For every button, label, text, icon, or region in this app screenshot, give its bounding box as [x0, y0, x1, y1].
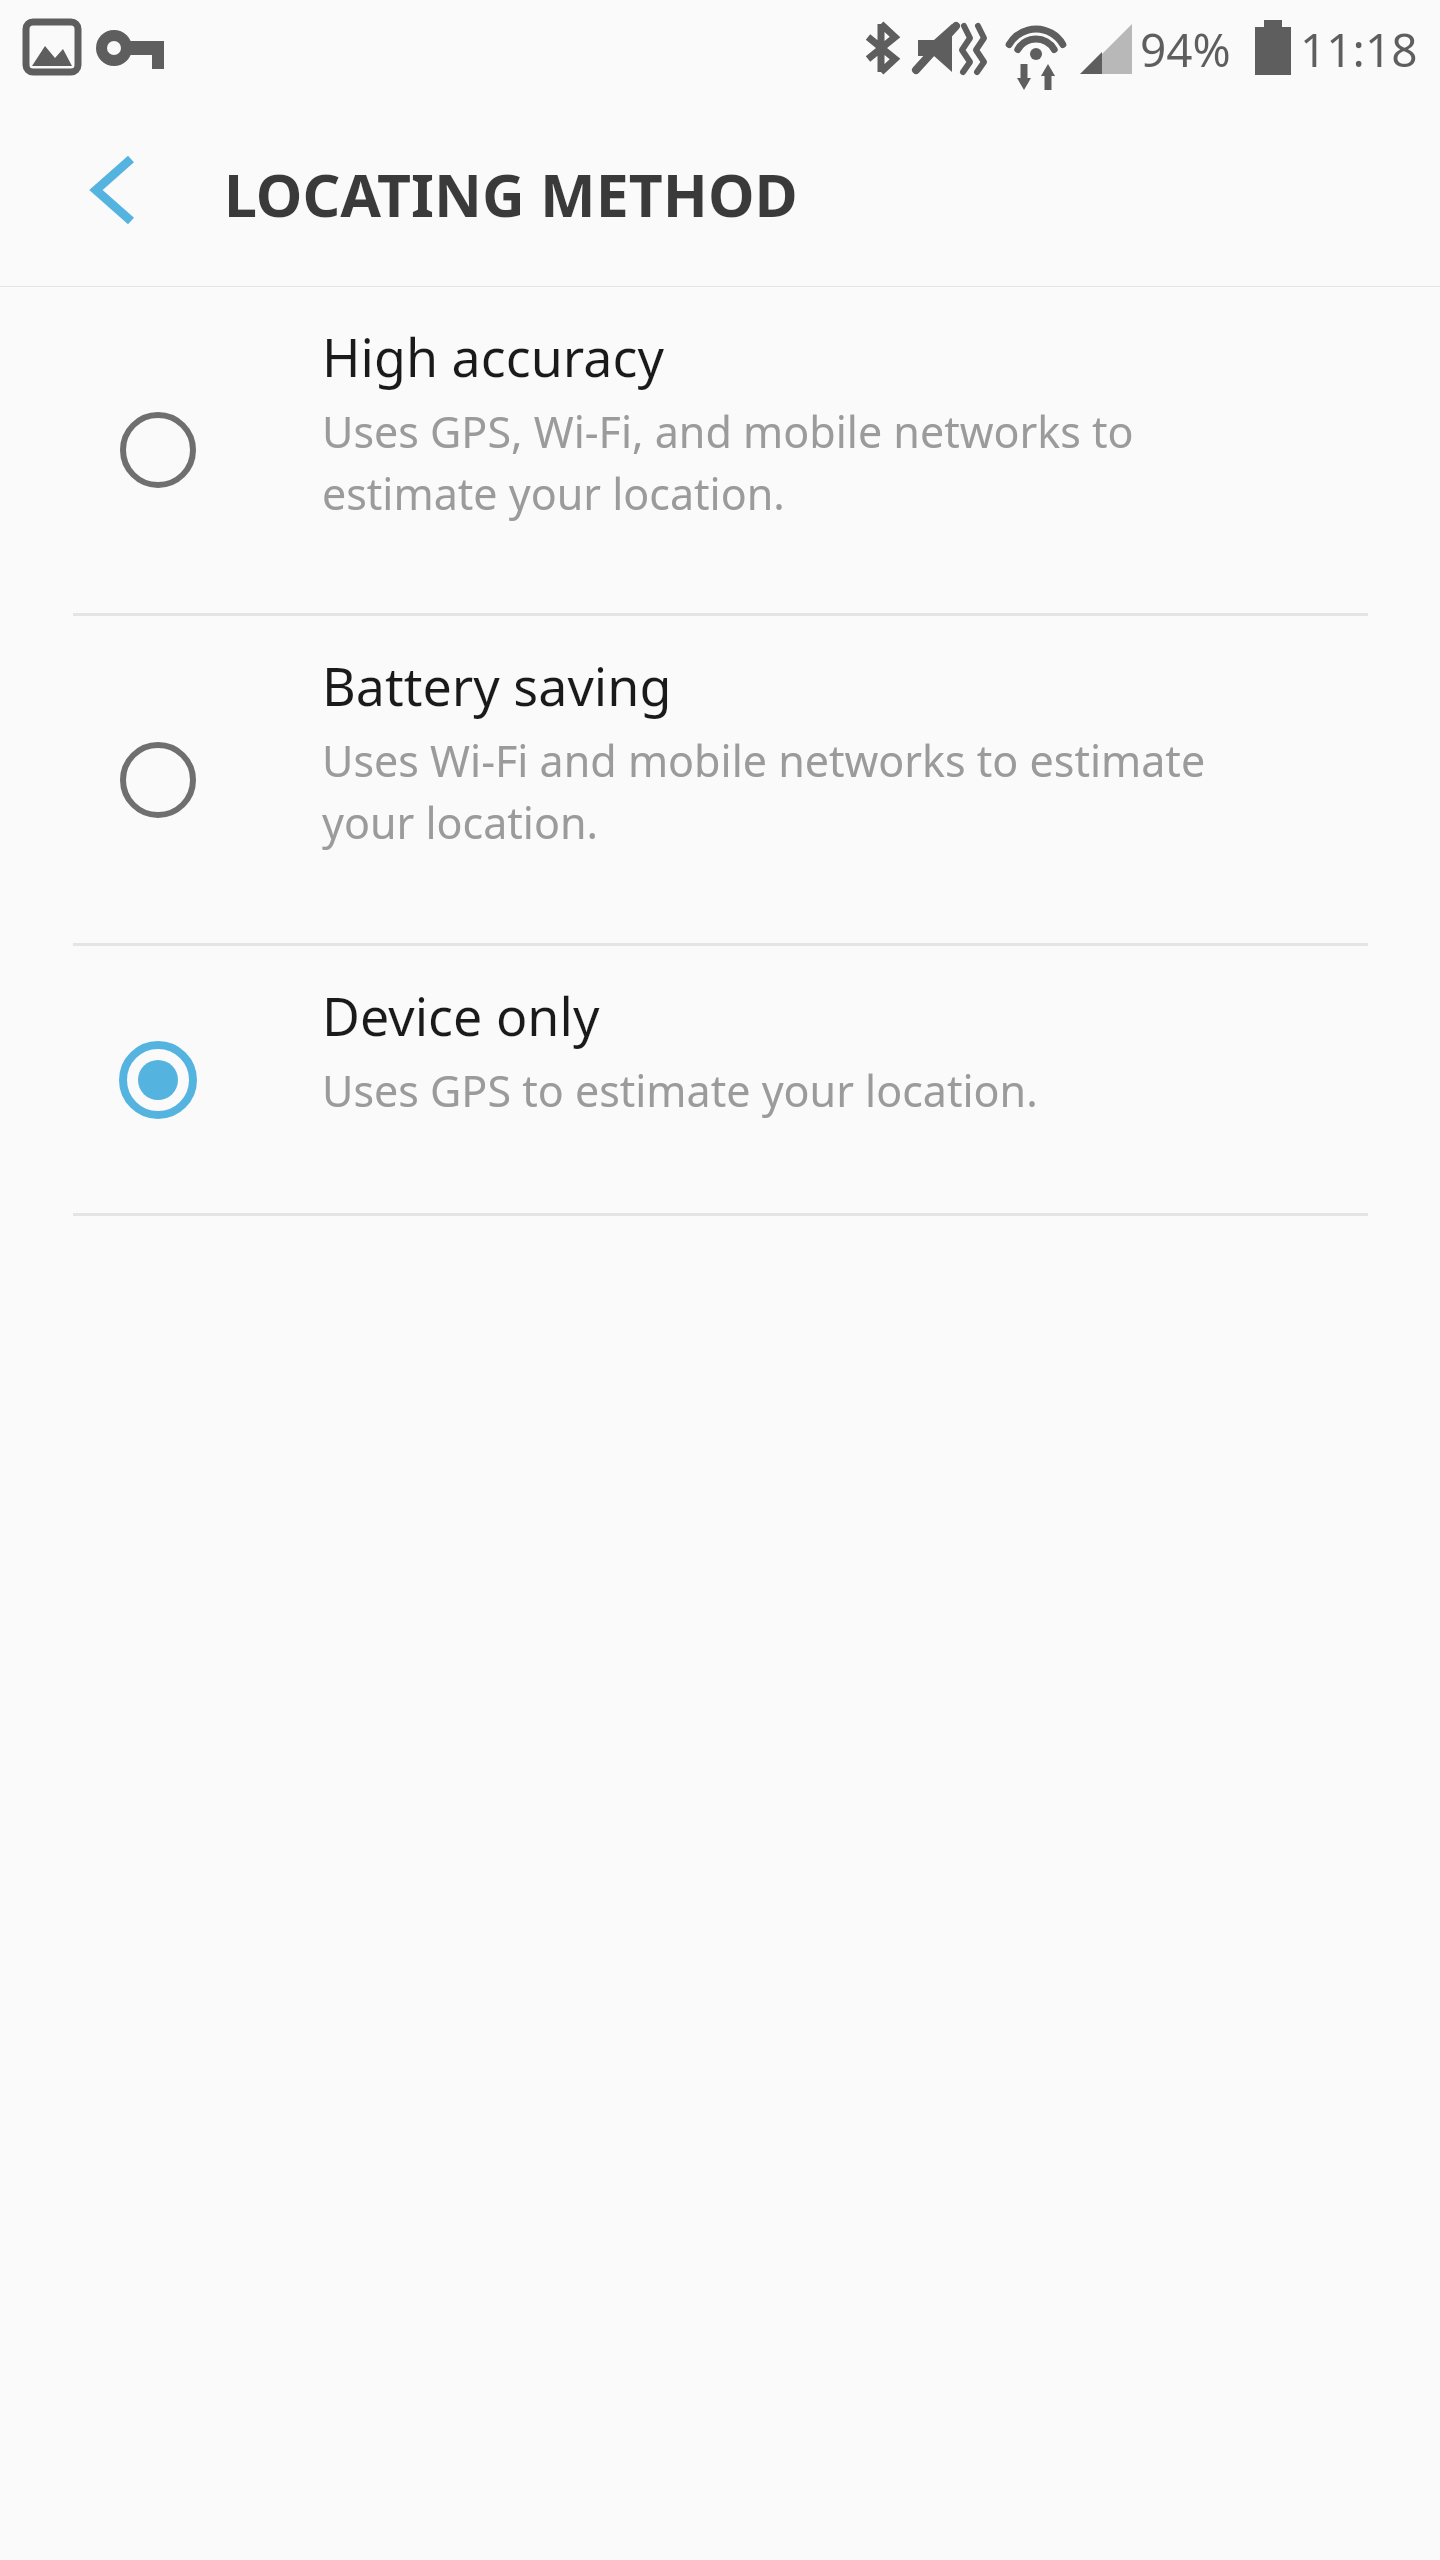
- staticText: Device only: [322, 980, 600, 1051]
- button[interactable]: Battery saving: [0, 616, 1440, 943]
- staticText: 94%: [1140, 18, 1231, 81]
- button[interactable]: Device only: [0, 946, 1440, 1213]
- button[interactable]: High accuracy: [0, 287, 1440, 613]
- staticText: Uses GPS to estimate your location.: [322, 1061, 1038, 1120]
- staticText: Uses Wi-Fi and mobile networks to estima…: [322, 731, 1206, 851]
- staticText: High accuracy: [322, 321, 664, 392]
- staticText: 11:18: [1300, 18, 1418, 81]
- staticText: Uses GPS, Wi-Fi, and mobile networks to …: [322, 402, 1134, 522]
- button[interactable]: Navigate up: [48, 125, 178, 255]
- staticText: LOCATING METHOD: [224, 154, 798, 234]
- staticText: Battery saving: [322, 650, 672, 721]
